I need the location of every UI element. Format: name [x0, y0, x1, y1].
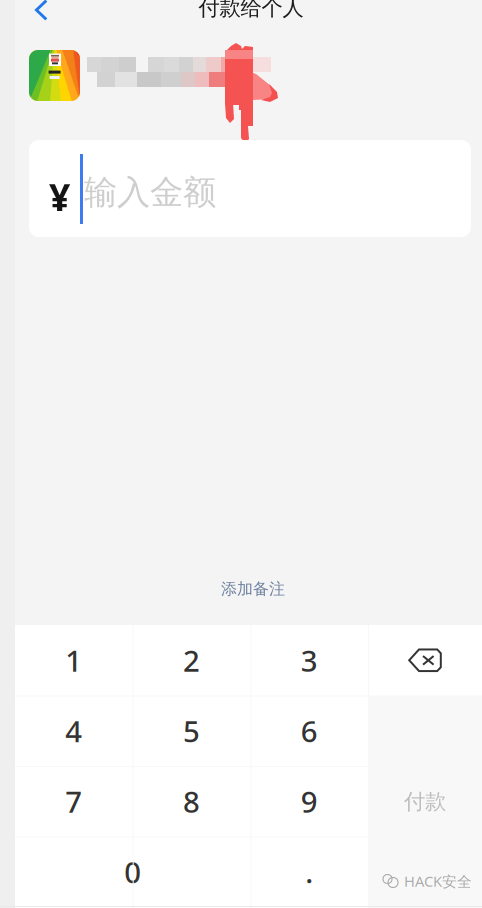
button[interactable]: 添加备注	[193, 572, 313, 606]
button[interactable]: 3	[250, 625, 368, 695]
button[interactable]	[29, 50, 329, 101]
staticText: 3	[301, 641, 318, 680]
staticText: 4	[65, 711, 82, 750]
staticText: 8	[183, 782, 200, 821]
staticText: HACK安全	[404, 871, 472, 891]
button[interactable]: 1	[15, 625, 133, 695]
button[interactable]: 0	[15, 836, 250, 907]
button[interactable]: 2	[133, 625, 250, 695]
staticText: 付款给个人	[198, 0, 303, 21]
staticText: 6	[301, 711, 318, 750]
staticText: 1	[65, 641, 82, 680]
button[interactable]: Back	[19, 0, 63, 32]
staticText: .	[305, 852, 313, 891]
button[interactable]: 付款	[368, 695, 482, 908]
staticText: 5	[183, 711, 200, 750]
button[interactable]: 5	[133, 695, 250, 766]
staticText: 付款	[404, 789, 446, 815]
staticText: ¥	[49, 172, 70, 222]
staticText: 输入金额	[84, 172, 216, 213]
staticText: 2	[183, 641, 200, 680]
staticText: 7	[65, 782, 82, 821]
button[interactable]: 7	[15, 766, 133, 836]
staticText: 9	[301, 782, 318, 821]
button[interactable]: 9	[250, 766, 368, 836]
button[interactable]: 4	[15, 695, 133, 766]
staticText: 0	[124, 852, 141, 891]
button[interactable]: 8	[133, 766, 250, 836]
button[interactable]: Delete	[368, 625, 482, 695]
staticText: 添加备注	[221, 579, 285, 599]
button[interactable]: .	[250, 836, 368, 907]
button[interactable]: 6	[250, 695, 368, 766]
